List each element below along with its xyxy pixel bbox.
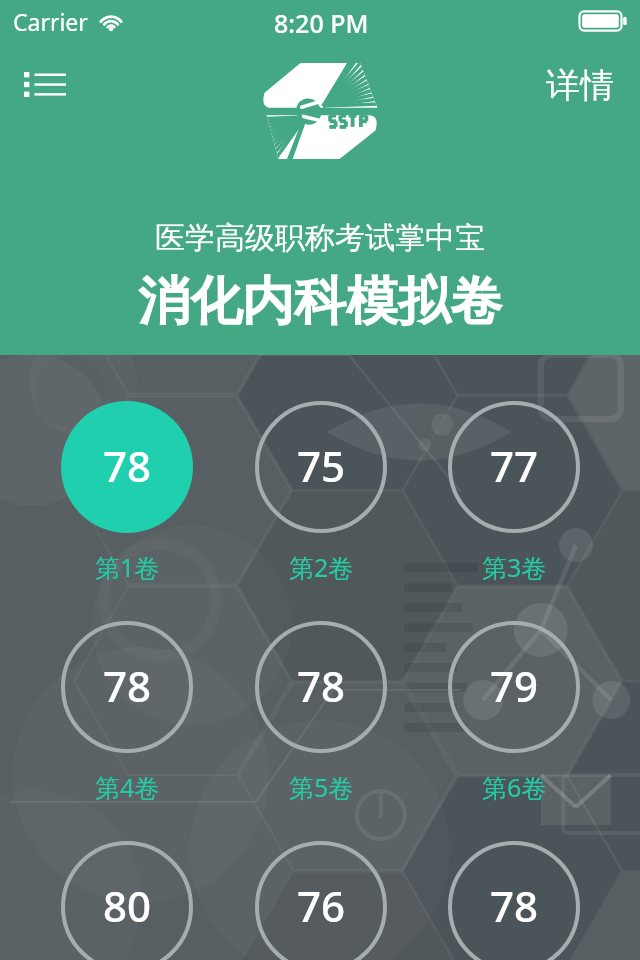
button[interactable]: 79 — [448, 621, 580, 804]
staticText: 76 — [297, 877, 346, 934]
staticText: 78 — [490, 877, 539, 934]
other: SSTP logo — [257, 57, 383, 165]
staticText: 78 — [103, 437, 152, 494]
staticText: 第6卷 — [482, 770, 547, 804]
staticText: 第2卷 — [289, 550, 354, 584]
staticText: 79 — [490, 657, 539, 714]
staticText: 医学高级职称考试掌中宝 — [155, 219, 485, 257]
button[interactable]: 78 — [448, 841, 580, 960]
staticText: 详情 — [546, 64, 614, 107]
staticText: 77 — [490, 437, 539, 494]
staticText: 第3卷 — [482, 550, 547, 584]
staticText: 第1卷 — [95, 550, 160, 584]
staticText: 75 — [297, 437, 346, 494]
button[interactable]: Menu — [12, 57, 78, 111]
staticText: 78 — [103, 657, 152, 714]
staticText: 第4卷 — [95, 770, 160, 804]
staticText: 第5卷 — [289, 770, 354, 804]
button[interactable]: 详情 — [534, 57, 626, 113]
button[interactable]: 77 — [448, 401, 580, 584]
staticText: 78 — [297, 657, 346, 714]
button[interactable]: 75 — [255, 401, 387, 584]
staticText: 消化内科模拟卷 — [138, 269, 502, 335]
button[interactable]: 78 — [61, 401, 193, 584]
staticText: 80 — [103, 877, 152, 934]
button[interactable]: 80 — [61, 841, 193, 960]
staticText: Carrier — [13, 6, 88, 37]
staticText: 8:20 PM — [274, 6, 369, 40]
button[interactable]: 78 — [61, 621, 193, 804]
button[interactable]: 76 — [255, 841, 387, 960]
button[interactable]: 78 — [255, 621, 387, 804]
